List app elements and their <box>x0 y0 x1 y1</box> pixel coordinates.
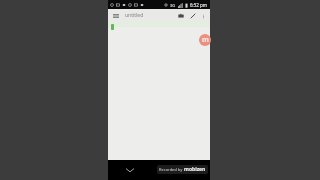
staticText: mobizen <box>184 166 206 173</box>
staticText: Recorded by <box>159 167 184 172</box>
button[interactable]: More options <box>199 12 207 20</box>
staticText: untitled <box>125 12 144 19</box>
staticText: 3G <box>170 3 176 8</box>
staticText: 6:52 pm <box>190 2 208 8</box>
staticText: m <box>202 35 209 45</box>
button[interactable]: Menu <box>111 11 120 20</box>
button[interactable]: Back <box>124 164 136 176</box>
button[interactable]: Edit <box>188 11 197 20</box>
button[interactable]: Add image <box>176 11 185 20</box>
button[interactable]: New note <box>199 34 211 46</box>
